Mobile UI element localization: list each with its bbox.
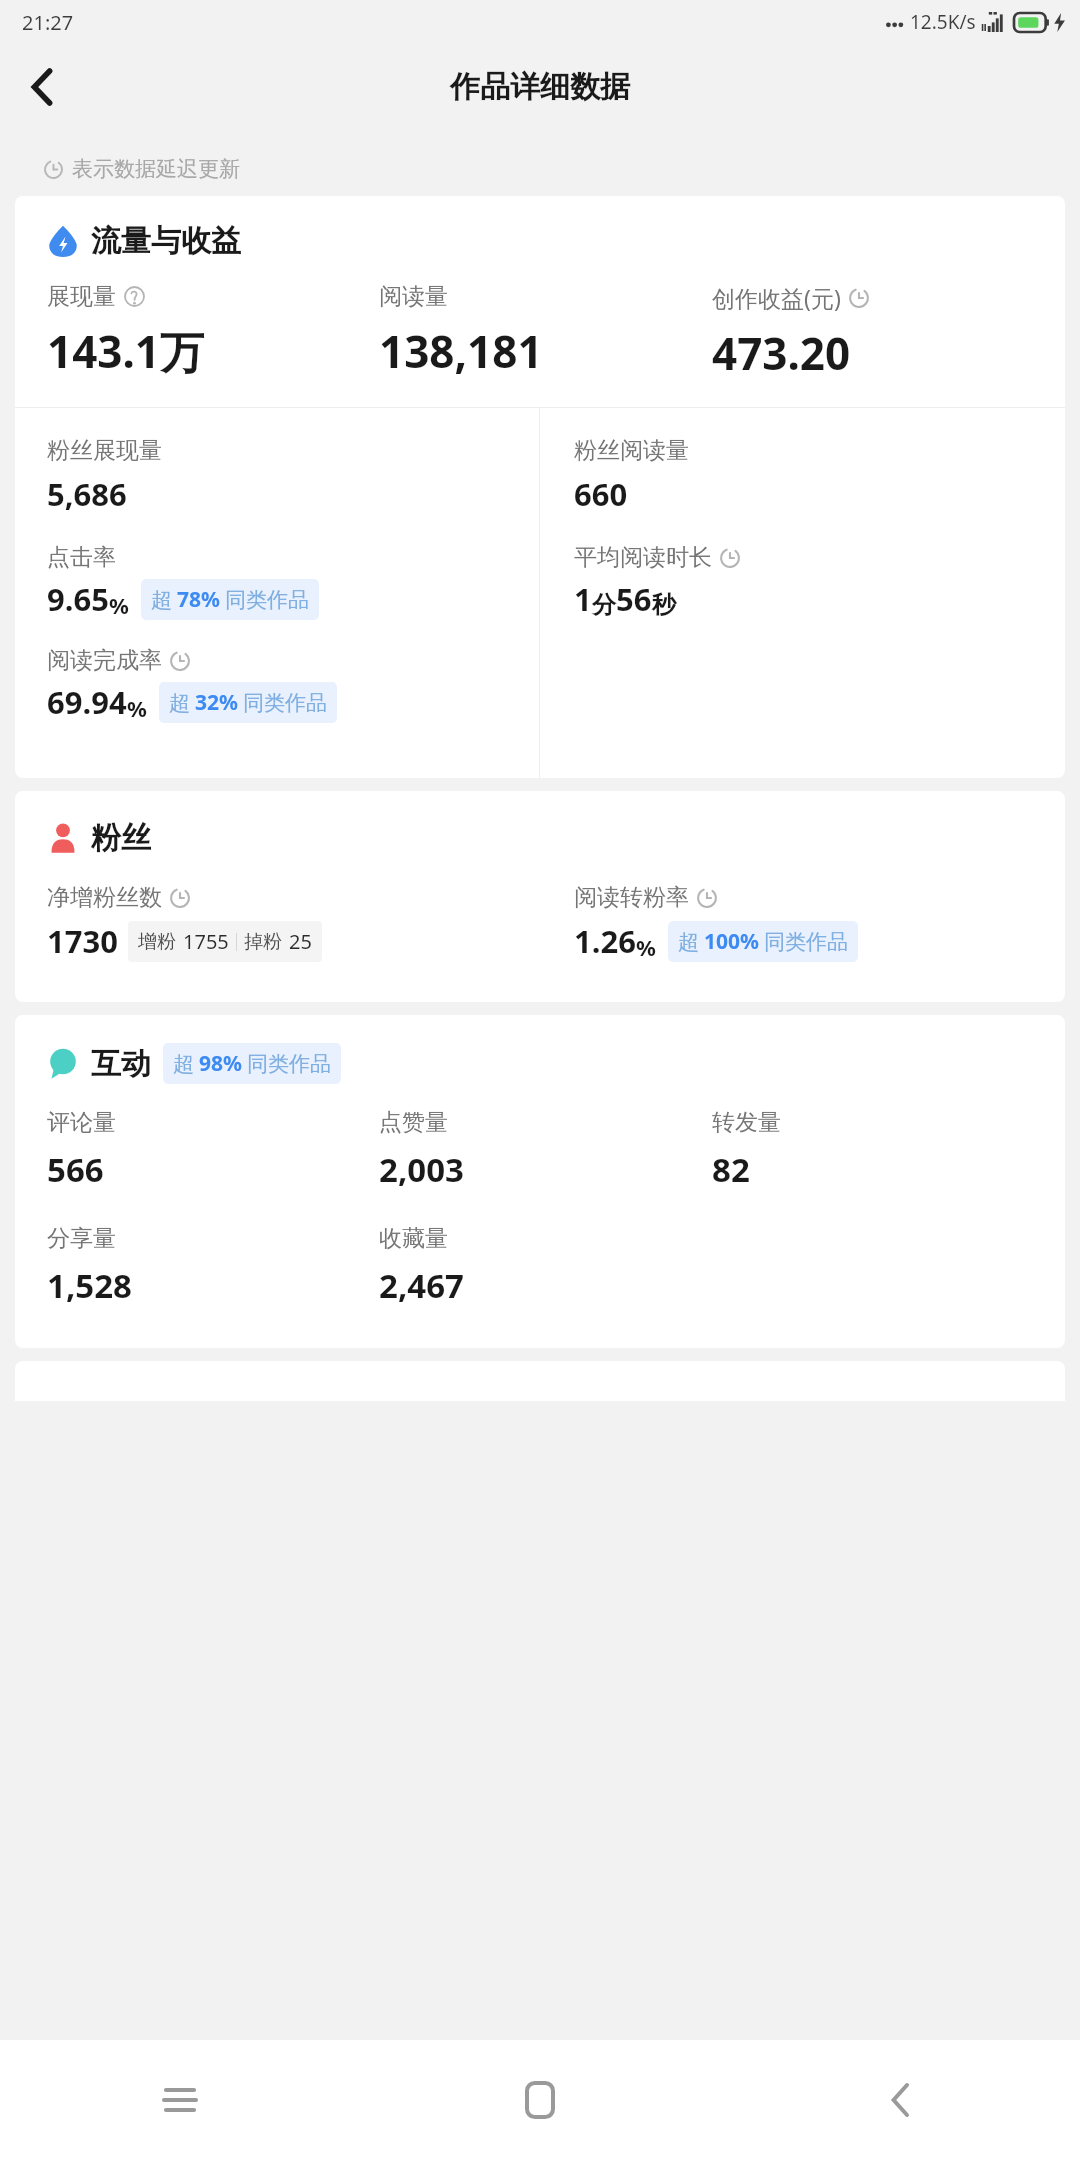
staticText: 143.1万 [47,321,205,381]
staticText: 表示数据延迟更新 [72,156,240,182]
staticText: 超 [169,690,190,716]
staticText: 同类作品 [247,1051,331,1077]
button[interactable]: Menu [0,2040,360,2160]
staticText: 互动 [91,1045,151,1083]
staticText: 2,467 [379,1263,464,1308]
staticText: 56 [616,578,652,620]
staticText: 阅读完成率 [47,646,162,675]
staticText: 25 [289,928,312,955]
staticText: 2,003 [379,1147,464,1192]
button[interactable]: 流量与收益 [47,222,241,260]
staticText: % [109,590,129,620]
staticText: 转发量 [712,1108,781,1137]
staticText: 阅读转粉率 [574,883,689,912]
button[interactable]: 展现量 [47,282,379,381]
staticText: 点赞量 [379,1108,448,1137]
staticText: 作品详细数据 [450,68,630,106]
staticText: 100% [704,927,759,956]
staticText: 82 [712,1147,750,1192]
staticText: 超 [678,929,699,955]
button[interactable]: 创作收益(元) [712,282,1045,383]
staticText: 1 [574,578,592,620]
staticText: 1,528 [47,1263,132,1308]
button[interactable]: 转发量 [712,1108,1045,1192]
button[interactable]: 评论量 [47,1108,379,1192]
staticText: 超 [173,1051,194,1077]
staticText: 69.94 [47,681,127,723]
staticText: 9.65 [47,578,109,620]
staticText: 点击率 [47,543,116,572]
staticText: 78% [177,585,220,614]
button[interactable]: Home [360,2040,720,2160]
staticText: 同类作品 [243,690,327,716]
staticText: 阅读量 [379,282,448,311]
staticText: 评论量 [47,1108,116,1137]
staticText: 1.26 [574,920,636,962]
staticText: % [127,693,147,723]
button[interactable]: Back [720,2040,1080,2160]
button[interactable]: 分享量 [47,1224,379,1308]
button[interactable]: 粉丝 [47,819,151,857]
staticText: 平均阅读时长 [574,543,712,572]
button[interactable]: 收藏量 [379,1224,712,1308]
button[interactable]: 点赞量 [379,1108,712,1192]
staticText: 粉丝阅读量 [574,436,689,465]
staticText: 32% [195,688,238,717]
staticText: 98% [199,1049,242,1078]
staticText: 粉丝 [91,819,151,857]
staticText: 1730 [47,920,118,962]
staticText: 566 [47,1147,104,1192]
staticText: 净增粉丝数 [47,883,162,912]
button[interactable]: 阅读量 [379,282,712,381]
staticText: 分 [592,590,616,620]
staticText: 超 [151,587,172,613]
staticText: 660 [574,473,628,515]
staticText: 21:27 [22,9,74,36]
staticText: 1755 [183,928,229,955]
staticText: 创作收益(元) [712,282,841,313]
button[interactable]: 互动 [47,1043,341,1084]
staticText: % [636,932,656,962]
staticText: 流量与收益 [91,222,241,260]
staticText: 同类作品 [225,587,309,613]
staticText: 同类作品 [764,929,848,955]
staticText: 138,181 [379,321,543,381]
staticText: 12.5K/s [910,9,976,35]
button[interactable]: Back [10,55,74,119]
staticText: 473.20 [712,323,851,383]
staticText: 5,686 [47,473,127,515]
staticText: 粉丝展现量 [47,436,162,465]
staticText: 增粉 [138,930,176,954]
staticText: 秒 [652,590,676,620]
staticText: 掉粉 [244,930,282,954]
staticText: 展现量 [47,282,116,311]
staticText: 收藏量 [379,1224,448,1253]
staticText: 分享量 [47,1224,116,1253]
